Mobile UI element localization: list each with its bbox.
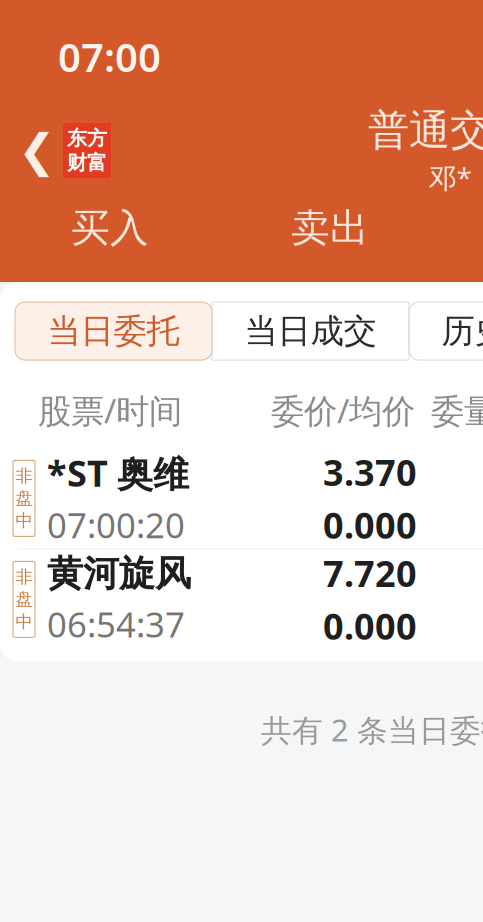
staticText: 中 [15,510,32,531]
staticText: 股票/时间 [38,388,182,432]
staticText: 委价/均价 [271,388,415,432]
staticText: 黄河旋风 [47,552,191,596]
staticText: 06:54:37 [47,601,185,647]
button[interactable]: 买入 [0,202,220,254]
staticText: 0.000 [323,501,417,549]
staticText: 卖出 [291,204,369,252]
staticText: 非 [15,566,32,588]
staticText: 历史委托 [441,311,483,351]
staticText: 东方 [67,126,107,151]
staticText: 07:00:20 [47,502,185,548]
button[interactable]: 历史委托 [409,302,483,360]
staticText: 买入 [71,204,149,252]
staticText: 共有 2 条当日委托 [261,709,483,750]
staticText: 中 [15,611,32,632]
staticText: 邓* [428,159,471,196]
button[interactable]: 当日成交 [212,302,409,360]
staticText: 委量/成交 [431,388,483,432]
staticText: 当日委托 [47,311,179,351]
button[interactable]: 当日委托 [15,302,212,360]
staticText: ❮ [18,125,56,176]
staticText: 当日成交 [244,311,376,351]
staticText: 0.000 [323,602,417,650]
staticText: 普通交易 [368,105,483,156]
staticText: 非 [15,465,32,487]
staticText: 盘 [15,488,32,509]
staticText: 财富 [67,151,107,175]
button[interactable]: Back [0,117,111,184]
button[interactable]: 卖出 [220,202,440,254]
staticText: 7.720 [323,549,417,597]
staticText: 3.370 [323,448,417,496]
button[interactable]: 非 [0,549,483,649]
button[interactable]: 非 [0,448,483,548]
staticText: 07:00 [58,30,161,83]
staticText: *ST 奥维 [47,449,189,497]
staticText: 盘 [15,589,32,610]
